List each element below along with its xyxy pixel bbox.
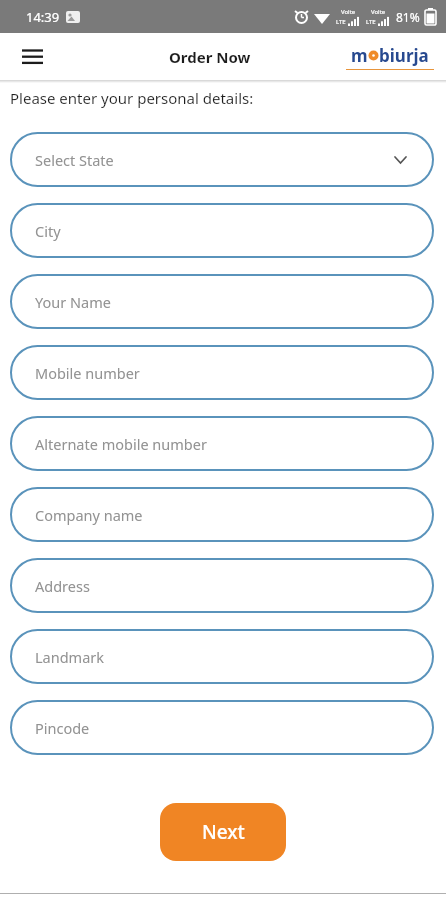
button[interactable]: Landmark: [10, 629, 434, 684]
button[interactable]: City: [10, 203, 434, 258]
staticText: Volte: [371, 8, 386, 16]
staticText: Next: [202, 819, 245, 845]
staticText: Company name: [35, 505, 143, 525]
staticText: Volte: [341, 8, 356, 16]
button[interactable]: Pincode: [10, 700, 434, 755]
staticText: m: [351, 44, 368, 67]
staticText: Pincode: [35, 718, 90, 738]
staticText: City: [35, 221, 61, 241]
staticText: Select State: [35, 150, 114, 170]
staticText: biurja: [379, 44, 429, 67]
staticText: Your Name: [35, 292, 111, 312]
staticText: LTE: [366, 18, 376, 26]
button[interactable]: Company name: [10, 487, 434, 542]
button[interactable]: Select State: [10, 132, 434, 187]
staticText: 14:39: [26, 8, 60, 26]
staticText: LTE: [336, 18, 346, 26]
staticText: Mobile number: [35, 363, 140, 383]
staticText: Order Now: [169, 47, 251, 67]
staticText: Please enter your personal details:: [10, 88, 254, 108]
staticText: Address: [35, 576, 90, 596]
staticText: Landmark: [35, 647, 105, 667]
button[interactable]: Your Name: [10, 274, 434, 329]
button[interactable]: Next: [160, 803, 286, 861]
staticText: 81%: [396, 9, 420, 25]
button[interactable]: Alternate mobile number: [10, 416, 434, 471]
button[interactable]: Address: [10, 558, 434, 613]
staticText: Alternate mobile number: [35, 434, 207, 454]
button[interactable]: [14, 39, 50, 75]
button[interactable]: Mobile number: [10, 345, 434, 400]
